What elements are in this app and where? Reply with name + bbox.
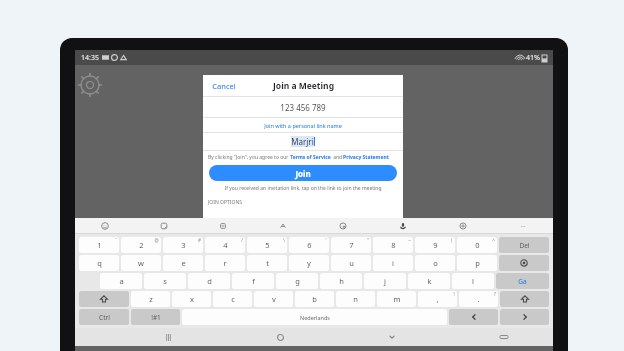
button[interactable]: !#1 (131, 309, 180, 325)
button[interactable]: Terms of Service (290, 154, 331, 161)
staticText: By clicking "Join", you agree to our (208, 154, 290, 161)
button[interactable]: Join (209, 165, 397, 181)
staticText: s (163, 276, 167, 286)
button[interactable]: f (232, 273, 274, 289)
button[interactable]: , (418, 291, 457, 307)
button[interactable]: 4 (205, 237, 245, 253)
button[interactable]: Nederlands (182, 309, 447, 325)
button[interactable]: n (336, 291, 375, 307)
button[interactable]: m (377, 291, 416, 307)
staticText: p (475, 258, 480, 268)
button[interactable]: Del (499, 237, 549, 253)
staticText: e (181, 258, 186, 268)
button[interactable]: x (172, 291, 211, 307)
staticText: m (393, 294, 401, 304)
button[interactable]: Translate (253, 218, 313, 233)
button[interactable]: Privacy Statement (343, 154, 389, 161)
staticText: Ga (518, 277, 527, 286)
button[interactable]: Switch keyboard (491, 328, 517, 346)
button[interactable]: shift (500, 291, 549, 307)
button[interactable]: z (131, 291, 170, 307)
staticText: 1 (97, 240, 102, 250)
button[interactable]: 3 (163, 237, 203, 253)
button[interactable]: c (213, 291, 252, 307)
button[interactable]: 2 (121, 237, 161, 253)
button[interactable]: 9 (415, 237, 455, 253)
button[interactable]: b (295, 291, 334, 307)
button[interactable]: u (331, 255, 371, 271)
button[interactable]: s (144, 273, 186, 289)
button[interactable]: q (79, 255, 119, 271)
staticText: r (223, 258, 227, 268)
button[interactable]: bksp (499, 255, 549, 271)
staticText: d (207, 276, 212, 286)
staticText: 3 (181, 240, 186, 250)
button[interactable]: e (163, 255, 203, 271)
button[interactable]: Recents (155, 328, 181, 346)
button[interactable]: Settings (81, 76, 99, 94)
staticText: q (97, 258, 102, 268)
staticText: Join a Meeting (273, 80, 334, 92)
button[interactable]: 5 (247, 237, 287, 253)
button[interactable]: Settings (433, 218, 493, 233)
button[interactable]: p (457, 255, 497, 271)
staticText: 0 (475, 240, 480, 250)
button[interactable]: Cancel (210, 79, 238, 93)
button[interactable]: l (452, 273, 494, 289)
staticText: l (472, 276, 474, 286)
staticText: ' (325, 237, 327, 243)
staticText: / (241, 237, 243, 243)
staticText: 8 (391, 240, 396, 250)
button[interactable]: shift (79, 291, 129, 307)
staticText: Join with a personal link name (264, 122, 342, 129)
button[interactable]: Ctrl (79, 309, 129, 325)
staticText: \ (283, 237, 285, 243)
staticText: , (436, 294, 439, 304)
button[interactable]: o (415, 255, 455, 271)
staticText: Cancel (212, 81, 236, 91)
staticText: ~ (408, 237, 411, 243)
staticText: 4 (223, 240, 228, 250)
button[interactable]: Hide keyboard (379, 328, 405, 346)
button[interactable]: y (289, 255, 329, 271)
button[interactable]: Stickers (134, 218, 193, 233)
button[interactable]: right (500, 309, 549, 325)
staticText: 2 (139, 240, 144, 250)
button[interactable]: 6 (289, 237, 329, 253)
button[interactable]: Home (267, 328, 293, 346)
button[interactable]: . (459, 291, 498, 307)
button[interactable]: j (364, 273, 406, 289)
button[interactable]: k (408, 273, 450, 289)
button[interactable]: g (276, 273, 318, 289)
staticText: !#1 (151, 313, 161, 322)
button[interactable]: r (205, 255, 245, 271)
button[interactable]: 123 456 789 (203, 97, 403, 117)
staticText: o (433, 258, 438, 268)
staticText: Join (295, 168, 311, 179)
button[interactable]: d (188, 273, 230, 289)
button[interactable]: Clipboard (193, 218, 253, 233)
staticText: ? (494, 291, 496, 297)
button[interactable]: v (254, 291, 293, 307)
button[interactable]: left (449, 309, 498, 325)
button[interactable]: Voice input (373, 218, 433, 233)
button[interactable]: h (320, 273, 362, 289)
staticText: 5 (265, 240, 270, 250)
button[interactable]: 8 (373, 237, 413, 253)
button[interactable]: i (373, 255, 413, 271)
button[interactable]: 1 (79, 237, 119, 253)
button[interactable]: Join with a personal link name (203, 118, 403, 132)
button[interactable]: Ga (496, 273, 549, 289)
button[interactable]: w (121, 255, 161, 271)
button[interactable]: 0 (457, 237, 497, 253)
button[interactable]: t (247, 255, 287, 271)
button[interactable]: 7 (331, 237, 371, 253)
button[interactable]: a (100, 273, 142, 289)
button[interactable]: GIF (313, 218, 373, 233)
staticText: and (331, 154, 343, 161)
button[interactable]: Emoji (75, 218, 134, 233)
staticText: j (384, 276, 386, 286)
staticText: 14:35 (81, 53, 99, 63)
staticText: Terms of Service (290, 154, 331, 161)
